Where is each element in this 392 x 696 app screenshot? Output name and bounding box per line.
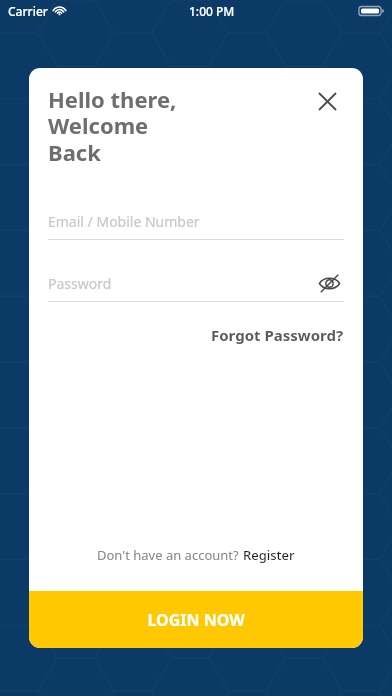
staticText: Forgot Password? — [211, 325, 344, 345]
button[interactable]: Password — [48, 265, 344, 301]
button[interactable]: Show password — [314, 268, 344, 298]
button[interactable]: Close — [310, 84, 344, 118]
button[interactable]: Email / Mobile Number — [48, 203, 344, 239]
button[interactable]: LOGIN NOW — [29, 591, 363, 648]
button[interactable]: Forgot Password? — [211, 322, 344, 348]
staticText: LOGIN NOW — [147, 609, 245, 631]
staticText: Password — [48, 274, 112, 293]
staticText: Don't have an account? — [97, 546, 243, 564]
button[interactable]: Don't have an account? — [48, 546, 344, 564]
staticText: Email / Mobile Number — [48, 212, 200, 231]
staticText: Carrier — [8, 3, 48, 19]
staticText: 1:00 PM — [189, 3, 235, 19]
staticText: Register — [243, 546, 295, 564]
staticText: Hello there, Welcome Back — [48, 84, 177, 168]
